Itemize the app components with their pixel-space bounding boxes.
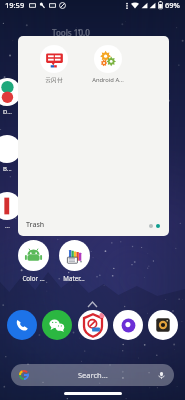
button[interactable]: B... — [0, 135, 28, 173]
staticText: Search... — [78, 370, 108, 380]
staticText: ... — [5, 222, 10, 230]
staticText: Color ... — [22, 274, 45, 282]
button[interactable]: 云闪付 — [32, 45, 76, 83]
button[interactable]: Search... — [11, 364, 174, 386]
staticText: D... — [3, 108, 12, 116]
button[interactable]: Camera — [148, 310, 178, 340]
button[interactable]: Browser — [113, 310, 143, 340]
button[interactable]: D... — [0, 78, 28, 116]
button[interactable]: Security — [78, 310, 108, 340]
button[interactable]: Mater... — [52, 240, 96, 282]
button[interactable]: Home — [64, 392, 122, 395]
button[interactable]: Color ... — [11, 240, 55, 282]
staticText: 19:59 — [5, 0, 25, 10]
staticText: Mater... — [63, 274, 85, 282]
button[interactable]: Android A... — [86, 45, 130, 84]
staticText: Tools 10.0 — [52, 27, 90, 38]
button[interactable]: ... — [0, 192, 28, 230]
staticText: Android A... — [92, 76, 124, 84]
button[interactable]: WeChat — [42, 310, 72, 340]
staticText: 云闪付 — [45, 76, 63, 83]
button[interactable]: Trash — [26, 220, 45, 230]
staticText: Trash — [26, 220, 45, 230]
staticText: 69% — [165, 0, 180, 10]
staticText: B... — [3, 165, 12, 173]
button[interactable]: Phone — [7, 310, 37, 340]
